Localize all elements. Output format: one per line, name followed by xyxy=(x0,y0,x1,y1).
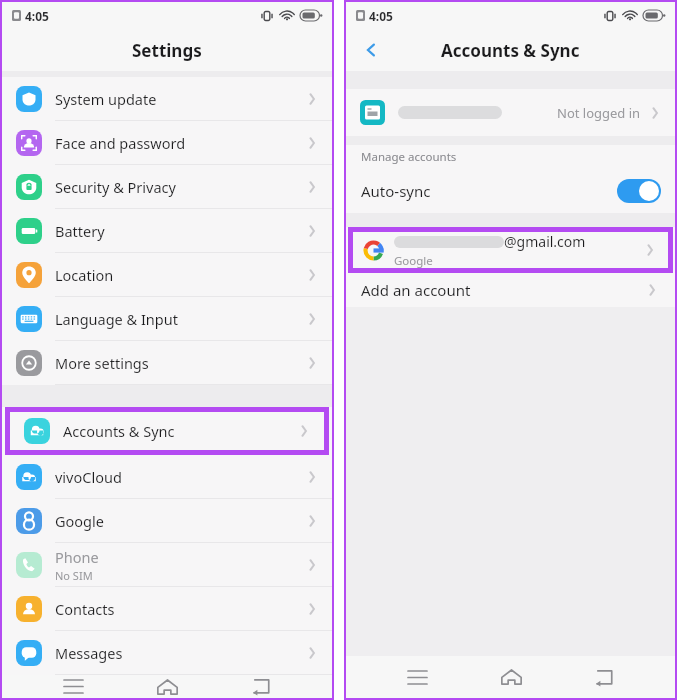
staticText: Settings xyxy=(132,39,202,62)
staticText: @gmail.com xyxy=(504,232,586,251)
staticText: No SIM xyxy=(55,568,93,583)
button[interactable]: Google xyxy=(2,499,332,543)
button[interactable]: Phone xyxy=(2,543,332,587)
staticText: Security & Privacy xyxy=(55,177,176,197)
staticText: Auto-sync xyxy=(361,181,617,201)
staticText: vivoCloud xyxy=(55,467,122,487)
button[interactable]: Recent apps xyxy=(50,675,96,698)
staticText: Google xyxy=(394,253,433,269)
button[interactable]: Back xyxy=(354,33,388,67)
staticText: Add an account xyxy=(361,280,644,300)
staticText: 4:05 xyxy=(25,8,49,24)
button[interactable]: Add an account xyxy=(346,273,675,307)
staticText: Contacts xyxy=(55,599,115,619)
button[interactable]: Accounts & Sync xyxy=(5,407,329,455)
staticText: Accounts & Sync xyxy=(441,39,580,62)
button[interactable]: Contacts xyxy=(2,587,332,631)
button[interactable]: Home xyxy=(144,675,190,698)
staticText: Language & Input xyxy=(55,309,178,329)
staticText: Google xyxy=(55,511,104,531)
button[interactable]: Back xyxy=(238,675,284,698)
staticText: Phone xyxy=(55,547,99,567)
button[interactable]: Security & Privacy xyxy=(2,165,332,209)
staticText: Battery xyxy=(55,221,105,241)
button[interactable]: Messages xyxy=(2,631,332,675)
button[interactable]: vivoCloud xyxy=(2,455,332,499)
button[interactable]: Recent apps xyxy=(394,656,440,698)
button[interactable]: Language & Input xyxy=(2,297,332,341)
button[interactable]: Auto-sync xyxy=(346,169,675,213)
button[interactable]: System update xyxy=(2,77,332,121)
button[interactable]: Location xyxy=(2,253,332,297)
staticText: Messages xyxy=(55,643,123,663)
button[interactable]: Battery xyxy=(2,209,332,253)
button[interactable]: Not logged in xyxy=(346,89,675,136)
button[interactable]: Back xyxy=(581,656,627,698)
button[interactable]: More settings xyxy=(2,341,332,385)
button[interactable]: Home xyxy=(488,656,534,698)
button[interactable]: Face and password xyxy=(2,121,332,165)
button[interactable]: @gmail.com xyxy=(348,227,673,273)
staticText: Face and password xyxy=(55,133,186,153)
staticText: 4:05 xyxy=(369,8,393,24)
staticText: Manage accounts xyxy=(361,149,457,165)
staticText: Accounts & Sync xyxy=(63,421,175,441)
staticText: Not logged in xyxy=(557,104,641,122)
staticText: System update xyxy=(55,89,157,109)
staticText: Location xyxy=(55,265,114,285)
staticText: More settings xyxy=(55,353,149,373)
